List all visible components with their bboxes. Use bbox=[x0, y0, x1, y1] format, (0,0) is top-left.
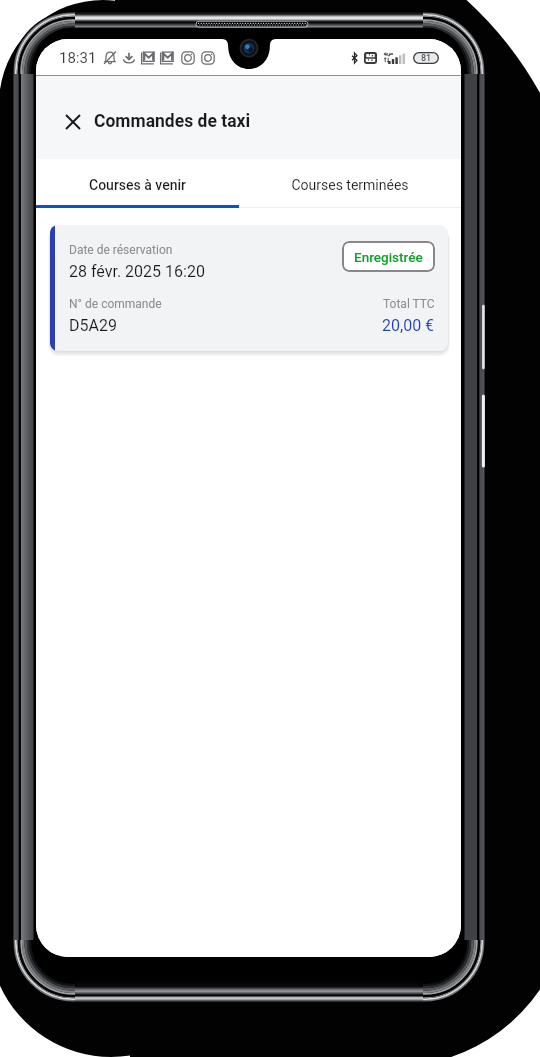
button[interactable]: Courses terminées bbox=[239, 159, 461, 208]
staticText: 20,00 € bbox=[382, 316, 435, 335]
button[interactable]: Courses à venir bbox=[36, 159, 239, 208]
staticText: Courses à venir bbox=[89, 177, 186, 193]
staticText: Total TTC bbox=[383, 297, 435, 311]
staticText: N° de commande bbox=[69, 297, 162, 311]
button[interactable]: Date de réservation bbox=[50, 225, 448, 351]
staticText: 18:31 bbox=[59, 49, 97, 67]
button[interactable]: Enregistrée bbox=[342, 241, 435, 272]
staticText: Enregistrée bbox=[354, 249, 423, 265]
staticText: Courses terminées bbox=[291, 177, 409, 193]
staticText: Date de réservation bbox=[69, 243, 173, 257]
button[interactable]: Fermer bbox=[55, 104, 91, 140]
staticText: D5A29 bbox=[69, 316, 117, 335]
staticText: Commandes de taxi bbox=[94, 111, 251, 132]
staticText: 28 févr. 2025 16:20 bbox=[69, 262, 205, 281]
staticText: 81 bbox=[421, 53, 432, 64]
